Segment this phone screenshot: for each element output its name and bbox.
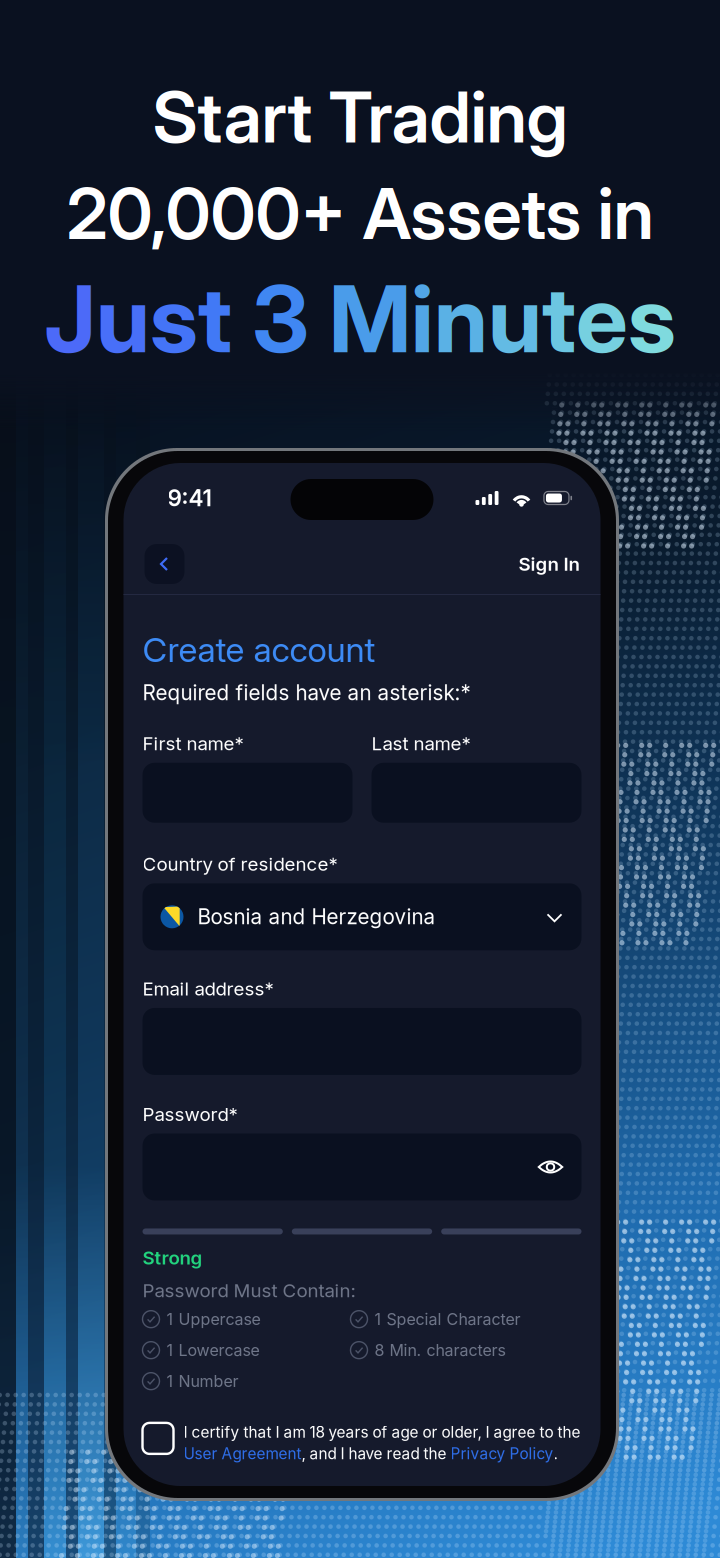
staticText: s	[150, 263, 198, 374]
staticText: i	[411, 263, 434, 374]
staticText: Bosnia and Herzegovina	[197, 904, 435, 929]
staticText: Start Trading	[152, 74, 567, 159]
staticText: , and I have read the	[301, 1444, 450, 1463]
staticText: Sign In	[518, 553, 579, 575]
staticText: 1 Lowercase	[166, 1340, 259, 1360]
staticText: Email address*	[142, 977, 273, 1000]
button[interactable]: Show password	[537, 1154, 581, 1180]
staticText: User Agreement	[183, 1444, 301, 1463]
button[interactable]: Bosnia and Herzegovina	[142, 883, 581, 950]
button[interactable]: Back	[144, 544, 184, 584]
staticText: t	[198, 263, 232, 374]
staticText: I certify that I am 18 years of age or o…	[183, 1423, 580, 1441]
staticText: Required fields have an asterisk:*	[142, 680, 470, 705]
staticText: n	[434, 263, 488, 374]
staticText: s	[628, 263, 676, 374]
staticText: u	[96, 263, 150, 374]
staticText: Strong	[142, 1246, 202, 1269]
staticText: M	[329, 263, 411, 374]
staticText: Country of residence*	[142, 853, 337, 875]
staticText: Password Must Contain:	[142, 1279, 355, 1302]
staticText: 1 Number	[166, 1371, 238, 1391]
button[interactable]: Certify age and agreement	[142, 1423, 173, 1454]
staticText: 20,000+ Assets in	[66, 170, 653, 256]
staticText: u	[488, 263, 542, 374]
staticText: Create account	[142, 629, 375, 670]
staticText: e	[576, 263, 628, 374]
staticText: 1 Uppercase	[166, 1309, 260, 1329]
staticText: 8 Min. characters	[374, 1340, 505, 1360]
button[interactable]: Sign In	[518, 553, 579, 575]
staticText: 3	[252, 263, 309, 374]
staticText: 1 Special Character	[374, 1309, 520, 1329]
staticText: t	[542, 263, 576, 374]
staticText: Privacy Policy	[450, 1444, 553, 1463]
staticText: Last name*	[371, 732, 470, 755]
staticText: .	[553, 1444, 557, 1463]
staticText: First name*	[142, 732, 243, 755]
staticText: 9:41	[167, 484, 211, 512]
staticText: Password*	[142, 1103, 237, 1125]
staticText: J	[44, 263, 96, 374]
